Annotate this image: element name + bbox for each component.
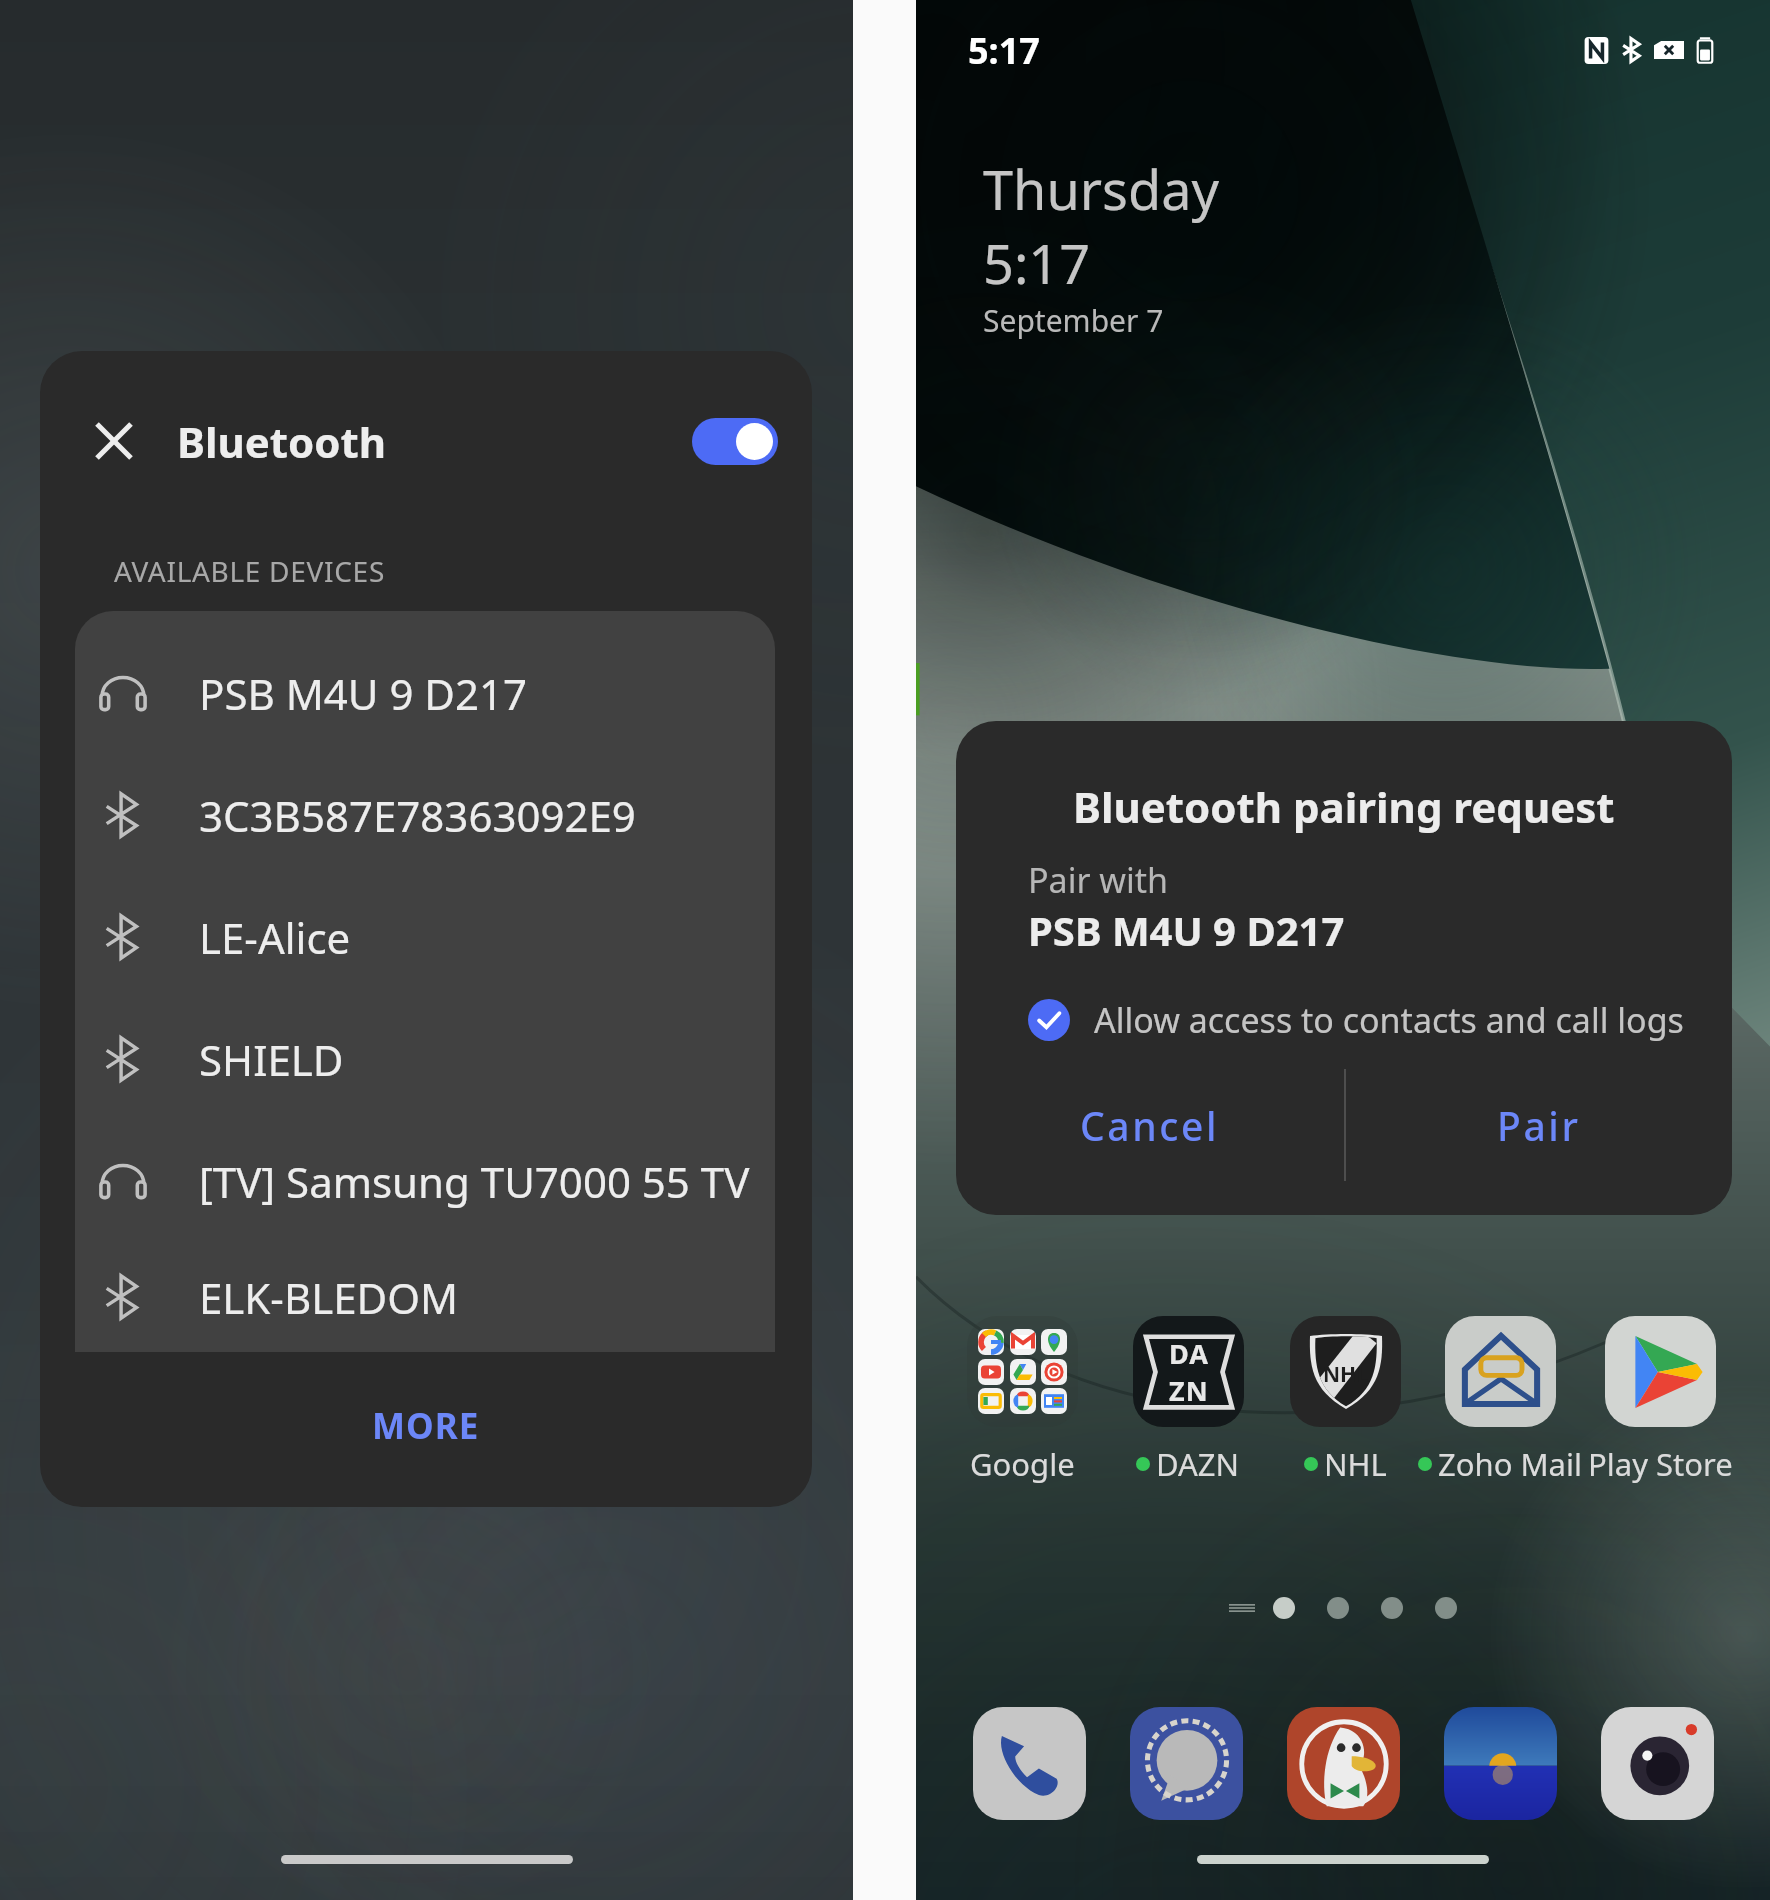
staticText: 5:17 — [968, 26, 1040, 75]
button[interactable]: DuckDuckGo — [1287, 1707, 1400, 1820]
staticText: Google — [970, 1443, 1075, 1485]
staticText: Zoho Mail — [1438, 1443, 1582, 1485]
staticText: LE-Alice — [199, 909, 351, 966]
button[interactable]: NHL — [1235, 1316, 1455, 1485]
staticText: AVAILABLE DEVICES — [114, 552, 385, 590]
staticText: 5:17 — [983, 226, 1091, 300]
button[interactable]: Bluetooth on/off — [692, 418, 778, 465]
button[interactable]: Google — [916, 1316, 1132, 1485]
button[interactable]: Signal — [1130, 1707, 1243, 1820]
button[interactable]: SHIELD — [75, 998, 775, 1120]
button[interactable]: Pair — [1346, 1069, 1732, 1181]
staticText: PSB M4U 9 D217 — [199, 665, 528, 722]
button[interactable]: Zoho Mail — [1390, 1316, 1610, 1485]
button[interactable]: [TV] Samsung TU7000 55 TV — [75, 1120, 775, 1242]
button[interactable]: Allow access to contacts and call logs — [1028, 992, 1684, 1048]
staticText: [TV] Samsung TU7000 55 TV — [199, 1153, 750, 1210]
staticText: Cancel — [1080, 1099, 1220, 1152]
staticText: ZN — [1169, 1372, 1209, 1409]
staticText: 3C3B587E78363092E9 — [199, 787, 636, 844]
button[interactable]: Close — [86, 413, 142, 469]
button[interactable]: LE-Alice — [75, 876, 775, 998]
button[interactable]: Cancel — [956, 1069, 1344, 1181]
staticText: Bluetooth — [177, 413, 387, 470]
staticText: Play Store — [1588, 1443, 1733, 1485]
button[interactable]: Phone — [973, 1707, 1086, 1820]
staticText: Pair with — [1028, 857, 1169, 903]
button[interactable]: 3C3B587E78363092E9 — [75, 754, 775, 876]
staticText: September 7 — [983, 300, 1164, 341]
staticText: NHL — [1324, 1443, 1387, 1485]
button[interactable]: PSB M4U 9 D217 — [75, 632, 775, 754]
button[interactable]: MORE — [40, 1352, 812, 1507]
staticText: PSB M4U 9 D217 — [1028, 903, 1345, 953]
staticText: DAZN — [1156, 1443, 1240, 1485]
staticText: MORE — [372, 1402, 480, 1450]
staticText: Bluetooth pairing request — [1073, 778, 1615, 834]
staticText: DA — [1169, 1335, 1209, 1372]
staticText: Pair — [1497, 1099, 1581, 1152]
button[interactable]: Camera — [1601, 1707, 1714, 1820]
staticText: Allow access to contacts and call logs — [1094, 997, 1684, 1043]
button[interactable]: Gallery — [1444, 1707, 1557, 1820]
staticText: NHL — [1323, 1360, 1368, 1389]
staticText: Thursday — [983, 152, 1219, 226]
staticText: ELK-BLEDOM — [199, 1269, 459, 1326]
button[interactable]: Play Store — [1550, 1316, 1770, 1485]
button[interactable]: ELK-BLEDOM — [75, 1242, 775, 1352]
staticText: SHIELD — [199, 1031, 344, 1088]
button[interactable]: DA — [1078, 1316, 1298, 1485]
